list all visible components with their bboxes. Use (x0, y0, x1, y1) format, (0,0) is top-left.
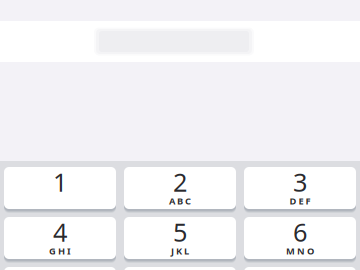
button[interactable]: 3 (244, 167, 356, 209)
staticText: D E F (289, 195, 310, 207)
button[interactable]: Phone number field (94, 26, 254, 56)
staticText: M N O (286, 245, 314, 257)
button[interactable]: 7 (4, 267, 116, 270)
staticText: 7 (53, 265, 67, 270)
button[interactable]: 5 (124, 217, 236, 259)
staticText: 5 (173, 215, 187, 249)
staticText: 6 (293, 215, 307, 249)
button[interactable]: 6 (244, 217, 356, 259)
button[interactable]: 8 (124, 267, 236, 270)
staticText: 9 (293, 265, 307, 270)
staticText: G H I (49, 245, 71, 257)
button[interactable]: 1 (4, 167, 116, 209)
button[interactable]: 4 (4, 217, 116, 259)
staticText: 8 (173, 265, 187, 270)
staticText: 1 (53, 165, 67, 199)
button[interactable]: 2 (124, 167, 236, 209)
staticText: 3 (293, 165, 307, 199)
staticText: J K L (171, 245, 189, 257)
staticText: 2 (173, 165, 187, 199)
staticText: 4 (53, 215, 67, 249)
staticText: A B C (169, 195, 191, 207)
button[interactable]: 9 (244, 267, 356, 270)
